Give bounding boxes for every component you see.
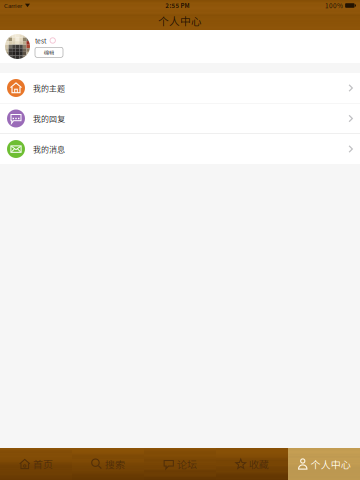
button[interactable]: 编辑: [35, 47, 63, 57]
staticText: 收藏: [249, 457, 269, 471]
staticText: Carrier: [4, 1, 22, 10]
staticText: 2:55 PM: [166, 1, 190, 10]
button[interactable]: 我的主题: [0, 73, 360, 103]
staticText: 个人中心: [158, 13, 202, 28]
button[interactable]: 收藏: [216, 448, 288, 480]
staticText: 搜索: [105, 457, 125, 471]
staticText: 个人中心: [311, 457, 351, 471]
staticText: 100%: [325, 1, 343, 10]
staticText: 首页: [33, 457, 53, 471]
staticText: 我的主题: [33, 82, 65, 94]
staticText: 我的消息: [33, 143, 65, 155]
staticText: 论坛: [177, 457, 197, 471]
button[interactable]: 首页: [0, 448, 72, 480]
staticText: 编辑: [44, 48, 54, 56]
staticText: 我的回复: [33, 113, 65, 124]
staticText: test: [35, 36, 47, 45]
button[interactable]: 我的消息: [0, 134, 360, 164]
button[interactable]: 搜索: [72, 448, 144, 480]
button[interactable]: 个人中心: [288, 448, 360, 480]
button[interactable]: 我的回复: [0, 103, 360, 133]
button[interactable]: 论坛: [144, 448, 216, 480]
